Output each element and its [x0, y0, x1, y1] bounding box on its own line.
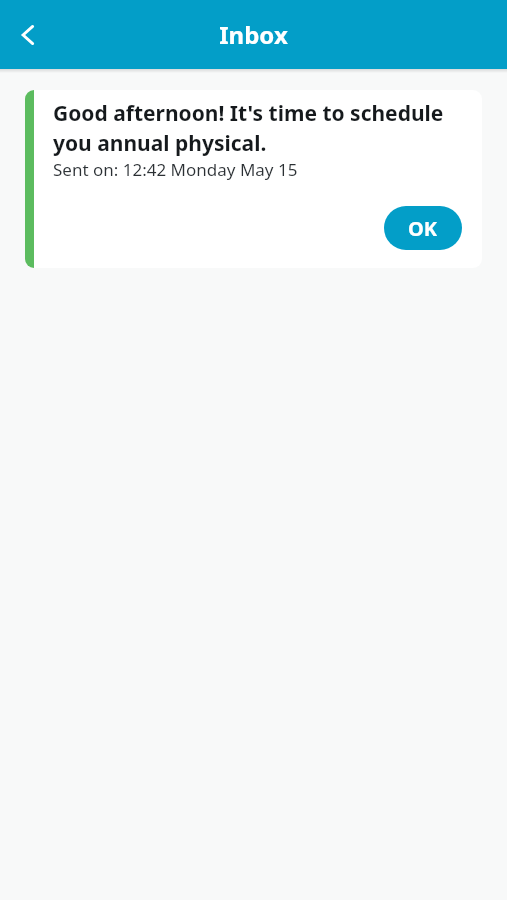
staticText: Inbox: [219, 18, 288, 51]
staticText: Good afternoon! It's time to schedule yo…: [53, 99, 460, 157]
staticText: OK: [408, 215, 438, 242]
button[interactable]: Good afternoon! It's time to schedule yo…: [25, 90, 482, 268]
button[interactable]: Back: [4, 11, 52, 59]
button[interactable]: OK: [384, 206, 462, 250]
staticText: Sent on: 12:42 Monday May 15: [53, 158, 298, 181]
